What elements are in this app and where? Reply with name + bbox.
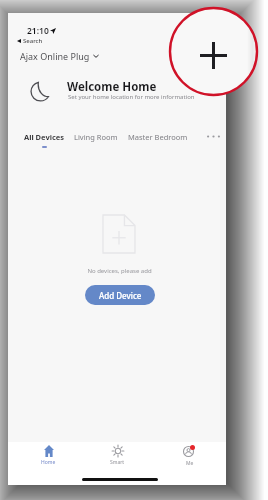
staticText: Add Device xyxy=(99,290,142,301)
button[interactable]: Living Room xyxy=(74,132,118,142)
staticText: Smart xyxy=(110,459,125,466)
button[interactable]: Master Bedroom xyxy=(128,132,188,142)
button[interactable]: Me xyxy=(160,442,219,484)
button[interactable]: Add Device xyxy=(85,285,155,305)
staticText: 21:10 xyxy=(27,25,49,37)
staticText: Me xyxy=(186,460,194,467)
button[interactable]: Home xyxy=(19,442,78,484)
button[interactable]: Smart xyxy=(88,442,147,484)
button[interactable]: More options xyxy=(204,127,222,145)
staticText: Set your home location for more informat… xyxy=(68,93,195,101)
staticText: No devices, please add xyxy=(87,267,152,275)
staticText: Search xyxy=(23,37,43,45)
button[interactable]: All Devices xyxy=(24,132,65,148)
staticText: Home xyxy=(41,459,56,466)
staticText: Welcome Home xyxy=(67,79,157,95)
button[interactable]: Ajax Online Plug xyxy=(20,50,99,62)
staticText: All Devices xyxy=(24,132,65,142)
staticText: Ajax Online Plug xyxy=(20,50,90,62)
